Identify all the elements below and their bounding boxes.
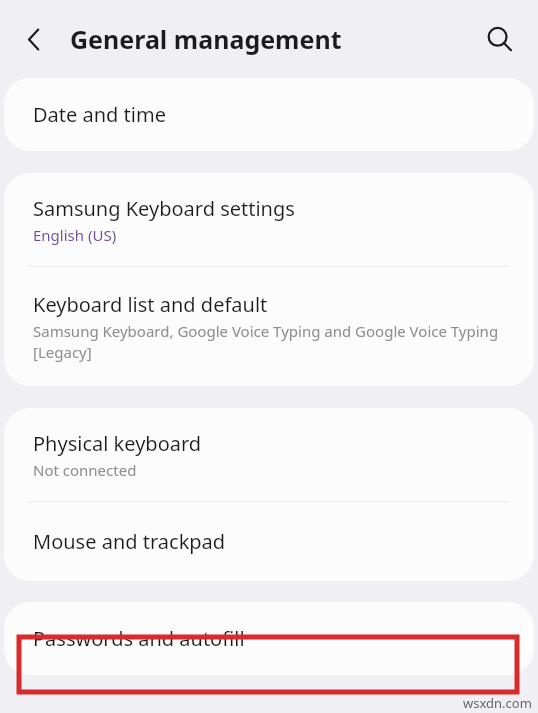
button[interactable]: Keyboard list and default	[4, 267, 534, 386]
button[interactable]: Mouse and trackpad	[4, 502, 534, 581]
staticText: Physical keyboard	[33, 430, 202, 457]
staticText: Samsung Keyboard, Google Voice Typing an…	[33, 321, 508, 363]
staticText: General management	[70, 22, 342, 56]
button[interactable]: Navigate up	[10, 15, 58, 63]
button[interactable]: Passwords and autofill	[4, 602, 534, 675]
button[interactable]: Physical keyboard	[4, 408, 534, 501]
button[interactable]: Samsung Keyboard settings	[4, 173, 534, 266]
staticText: Keyboard list and default	[33, 291, 268, 318]
staticText: Not connected	[33, 460, 137, 480]
staticText: Passwords and autofill	[33, 625, 245, 652]
button[interactable]: Search	[476, 16, 522, 62]
staticText: Samsung Keyboard settings	[33, 195, 295, 222]
button[interactable]: Date and time	[4, 78, 534, 151]
staticText: Mouse and trackpad	[33, 528, 226, 555]
staticText: English (US)	[33, 225, 117, 245]
staticText: wsxdn.com	[463, 694, 532, 712]
staticText: Date and time	[33, 101, 166, 128]
